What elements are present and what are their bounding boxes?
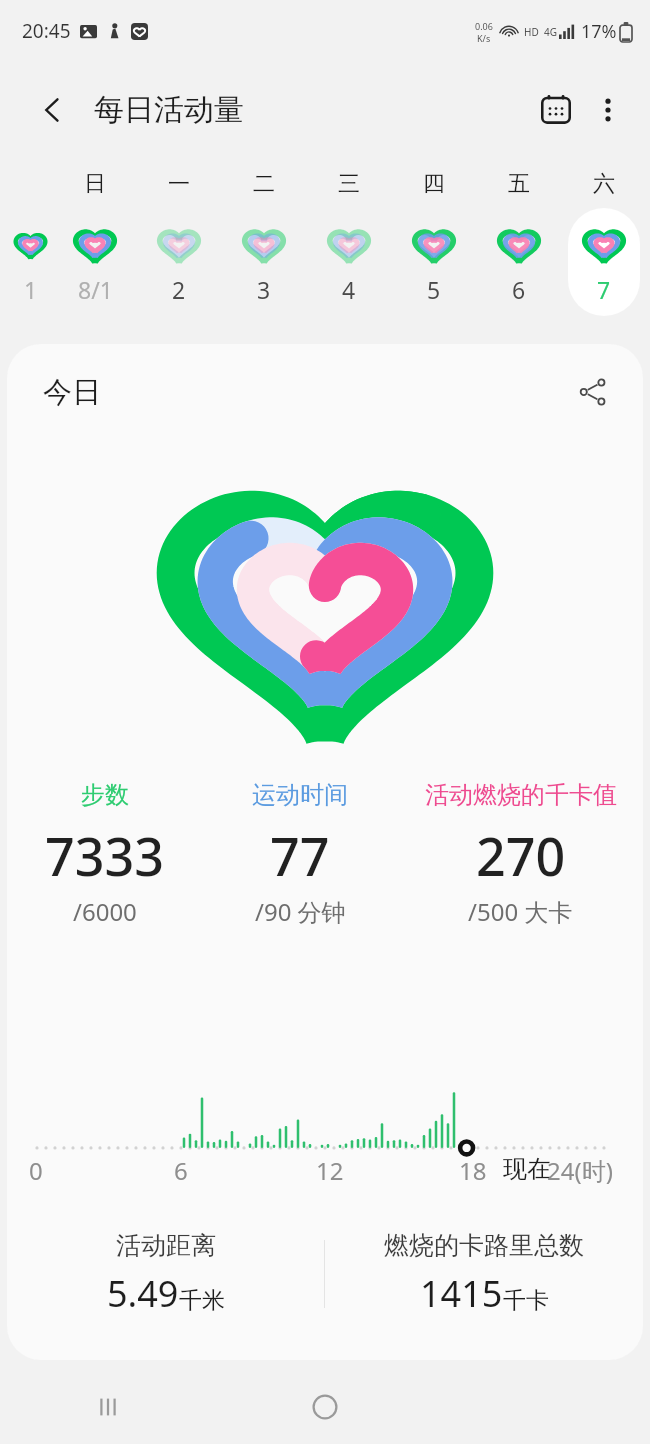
staticText: 每日活动量 [94,91,244,129]
staticText: 77 [270,820,330,891]
staticText: 6 [174,1154,188,1187]
staticText: 一 [168,170,190,198]
button[interactable]: 活动燃烧的千卡值 [398,780,643,928]
button[interactable]: 7 [568,208,640,316]
button[interactable]: Calendar [530,84,582,136]
staticText: 2 [172,274,186,305]
staticText: 燃烧的卡路里总数 [384,1230,584,1261]
staticText: /500 大卡 [468,895,573,928]
staticText: 四 [423,170,445,198]
staticText: 3 [257,274,271,305]
button[interactable]: 2 [143,208,215,316]
staticText: 4 [342,274,356,305]
button[interactable]: 8/1 [59,208,131,316]
staticText: 运动时间 [252,780,348,810]
button[interactable]: Activity rings [145,445,505,765]
button[interactable]: Share [567,366,619,418]
staticText: 8/1 [78,274,113,305]
button[interactable]: 步数 [7,780,202,928]
button[interactable]: 燃烧的卡路里总数 [325,1214,643,1334]
staticText: 7 [597,274,611,305]
staticText: /90 分钟 [255,895,346,928]
button[interactable]: 4 [313,208,385,316]
staticText: 7333 [45,820,164,891]
staticText: 12 [316,1154,344,1187]
staticText: 1415 [420,1269,503,1318]
staticText: 二 [253,170,275,198]
staticText: 270 [476,820,566,891]
staticText: 现在 [503,1154,551,1184]
button[interactable]: Home [216,1370,433,1444]
staticText: 千米 [179,1286,225,1315]
staticText: 五 [508,170,530,198]
staticText: 5.49 [107,1269,179,1318]
staticText: 24(时) [547,1154,613,1187]
staticText: 20:45 [22,18,71,44]
button[interactable]: 1 [12,208,49,316]
staticText: /6000 [73,895,137,928]
staticText: 日 [84,170,106,198]
button[interactable]: More options [582,84,634,136]
staticText: 三 [338,170,360,198]
staticText: 6 [512,274,526,305]
staticText: 0.06 [475,20,493,32]
staticText: 5 [427,274,441,305]
button[interactable]: 运动时间 [202,780,398,928]
button[interactable]: 活动距离 [7,1214,324,1334]
staticText: 17% [581,19,617,44]
staticText: K/s [477,32,491,44]
button[interactable]: 3 [228,208,300,316]
button[interactable]: Recents [0,1370,216,1444]
button[interactable]: Back [30,87,76,133]
button[interactable]: 5 [398,208,470,316]
button[interactable]: 6 [483,208,555,316]
staticText: 18 [459,1154,487,1187]
staticText: 活动距离 [116,1230,216,1261]
staticText: 4G [544,25,557,39]
staticText: 千卡 [503,1286,549,1315]
staticText: HD [524,25,539,39]
staticText: 步数 [81,780,129,810]
staticText: 0 [29,1154,43,1187]
staticText: 1 [24,274,38,305]
staticText: 今日 [43,374,101,411]
staticText: 活动燃烧的千卡值 [425,780,617,810]
staticText: 六 [593,170,615,198]
